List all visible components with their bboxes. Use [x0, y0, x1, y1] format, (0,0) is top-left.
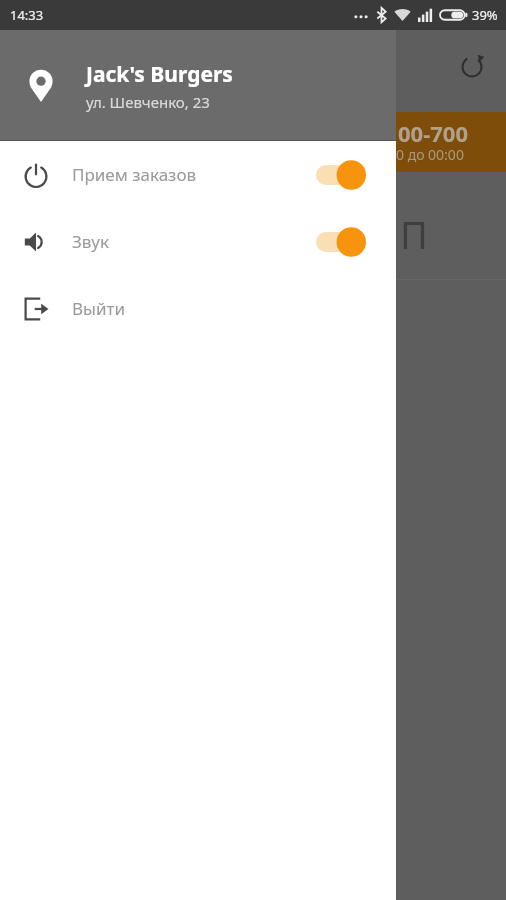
- staticText: П: [400, 208, 428, 260]
- button[interactable]: Jack's Burgers: [0, 30, 396, 141]
- button[interactable]: [316, 159, 368, 191]
- staticText: 14:33: [10, 6, 44, 24]
- staticText: Выйти: [72, 297, 125, 320]
- button[interactable]: Прием заказов: [0, 141, 396, 208]
- staticText: Прием заказов: [72, 163, 197, 186]
- button[interactable]: Refresh: [458, 53, 486, 81]
- button[interactable]: Звук: [0, 208, 396, 275]
- staticText: Звук: [72, 230, 109, 253]
- staticText: 00-700: [398, 118, 468, 148]
- button[interactable]: [316, 226, 368, 258]
- staticText: ул. Шевченко, 23: [86, 92, 210, 112]
- staticText: Jack's Burgers: [86, 60, 233, 89]
- button[interactable]: Выйти: [0, 275, 396, 342]
- staticText: 0 до 00:00: [396, 145, 464, 164]
- staticText: 39%: [472, 6, 498, 24]
